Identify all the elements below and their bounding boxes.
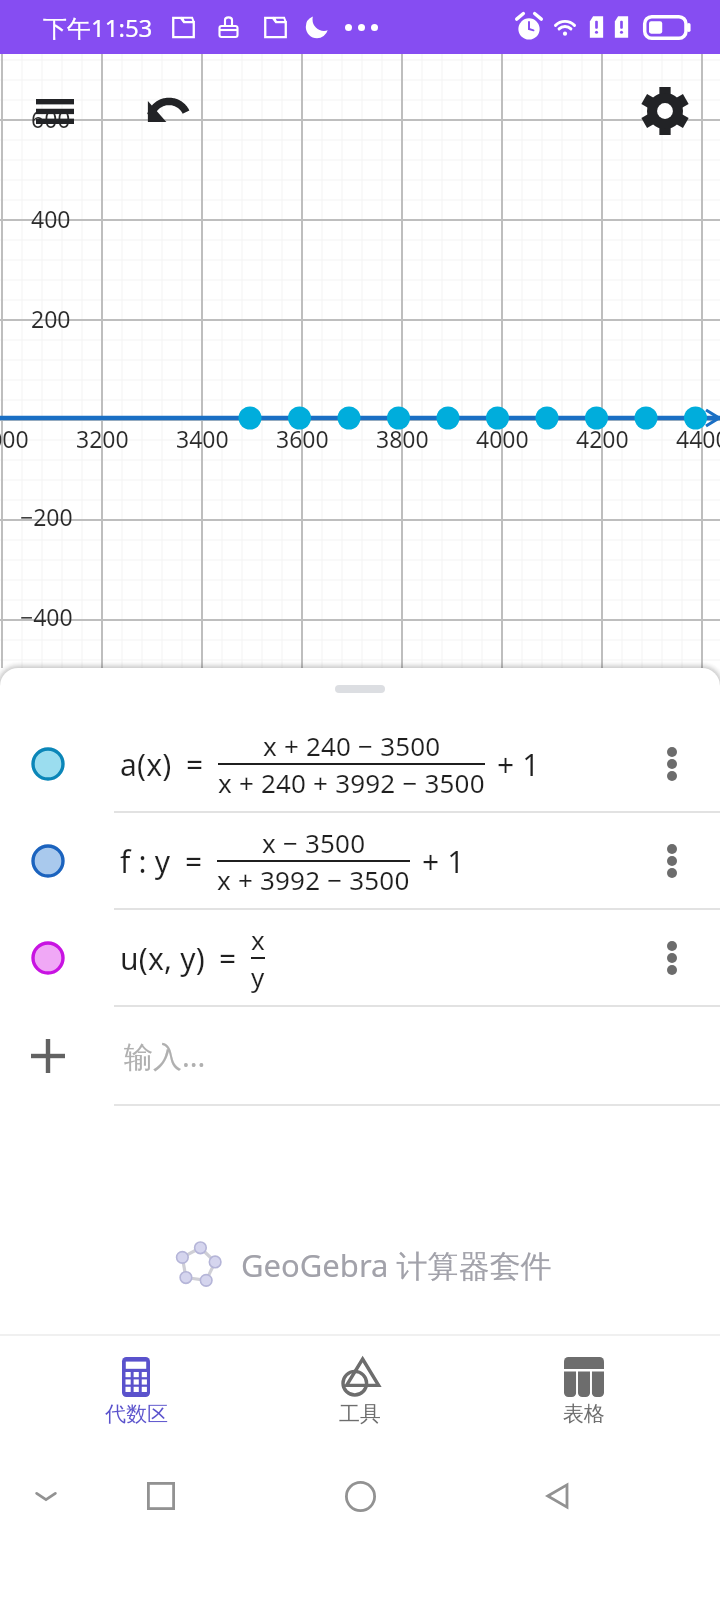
staticText: x + 240 + 3992 − 3500 [218,765,485,800]
staticText: −400 [20,601,73,632]
staticText: 下午11:53 [43,11,153,44]
staticText: 4000 [476,423,529,454]
staticText: 代数区 [105,1401,168,1427]
staticText: 4400 [676,423,720,454]
staticText: 3600 [276,423,329,454]
button[interactable]: f : y [0,813,720,910]
button[interactable]: Back [526,1464,590,1528]
staticText: x [251,922,265,957]
button[interactable]: 工具 [248,1336,472,1440]
button[interactable]: Menu [26,82,84,140]
button[interactable]: 输入... [0,1007,720,1104]
button[interactable]: a(x) [0,716,720,813]
staticText: x − 3500 [262,825,366,860]
button[interactable]: 代数区 [24,1336,248,1440]
button[interactable]: Hide keyboard [14,1464,78,1528]
staticText: a(x) [120,744,172,785]
staticText: = [186,744,204,785]
staticText: 3200 [76,423,129,454]
button[interactable]: 表格 [472,1336,696,1440]
staticText: 400 [31,203,71,234]
staticText: 3000 [0,423,29,454]
staticText: 200 [31,303,71,334]
staticText: y [251,959,265,994]
staticText: −200 [20,501,73,532]
button[interactable]: Home [328,1464,392,1528]
staticText: x + 240 − 3500 [263,728,441,763]
staticText: x + 3992 − 3500 [217,862,410,897]
staticText: 4200 [576,423,629,454]
staticText: = [219,938,237,979]
button[interactable]: Settings [636,82,694,140]
staticText: 3400 [176,423,229,454]
button[interactable]: u(x, y) [0,910,720,1007]
staticText: 表格 [563,1401,605,1427]
button[interactable]: Recents [129,1464,193,1528]
staticText: + 1 [497,744,540,785]
staticText: u(x, y) [120,938,205,979]
staticText: 600 [31,103,71,134]
staticText: 输入... [124,1036,206,1076]
staticText: f : y [120,841,171,882]
staticText: 工具 [339,1401,381,1427]
staticText: 3800 [376,423,429,454]
button[interactable]: Undo [140,82,198,140]
staticText: = [185,841,203,882]
staticText: + 1 [422,841,465,882]
staticText: GeoGebra 计算器套件 [241,1244,552,1286]
